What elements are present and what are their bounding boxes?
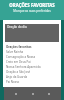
staticText: Pai Nosso — [6, 80, 20, 84]
staticText: Oração do dia — [7, 25, 27, 29]
button[interactable]: Salve Rainha — [3, 49, 61, 54]
button[interactable]: Anjo da Guarda — [3, 74, 61, 79]
staticText: ORAÇÕES FAVORITAS — [0, 2, 64, 8]
button[interactable]: Oração a São José — [3, 69, 61, 74]
button[interactable]: Oração do dia — [5, 24, 59, 42]
button[interactable]: Orações favoritas — [3, 44, 61, 49]
button[interactable]: Back — [12, 90, 20, 98]
staticText: Anjo da Guarda — [6, 75, 28, 79]
staticText: Nossa Senhora Aparecida — [6, 65, 41, 69]
button[interactable]: Home — [29, 90, 37, 98]
staticText: Marque as suas preferidas — [0, 9, 64, 13]
staticText: Creio em Deus Pai — [6, 60, 31, 64]
button[interactable]: Recents — [45, 90, 53, 98]
button[interactable]: Nossa Senhora Aparecida — [3, 64, 61, 69]
button[interactable]: Consagração a Nossa — [3, 54, 61, 59]
staticText: Oração a São José — [6, 70, 31, 74]
staticText: Orações favoritas — [6, 45, 32, 49]
button[interactable]: Creio em Deus Pai — [3, 59, 61, 64]
button[interactable]: Pai Nosso — [3, 79, 61, 84]
staticText: Consagração a Nossa — [6, 55, 36, 59]
staticText: Salve Rainha — [6, 50, 24, 54]
